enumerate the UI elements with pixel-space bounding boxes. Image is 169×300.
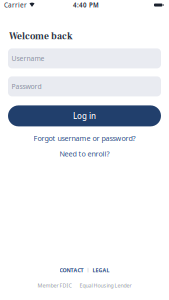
staticText: CONTACT <box>60 266 84 274</box>
staticText: Carrier <box>4 1 27 9</box>
staticText: Forgot username or password? <box>33 133 135 143</box>
staticText: Equal Housing Lender <box>79 282 131 289</box>
staticText: Password <box>11 82 41 91</box>
staticText: Member FDIC <box>37 282 71 289</box>
staticText: Username <box>11 54 44 63</box>
button[interactable]: Forgot username or password? <box>33 133 135 143</box>
button[interactable]: Password <box>8 76 161 96</box>
button[interactable]: LEGAL <box>92 266 109 274</box>
button[interactable]: Username <box>8 48 161 68</box>
staticText: LEGAL <box>92 266 109 274</box>
button[interactable]: CONTACT <box>60 266 84 274</box>
staticText: Welcome back <box>9 30 73 42</box>
staticText: 4:40 PM <box>73 1 99 9</box>
button[interactable]: Log in <box>8 105 161 126</box>
staticText: Log in <box>73 110 96 121</box>
staticText: Need to enroll? <box>59 149 109 158</box>
button[interactable]: Need to enroll? <box>59 149 109 158</box>
